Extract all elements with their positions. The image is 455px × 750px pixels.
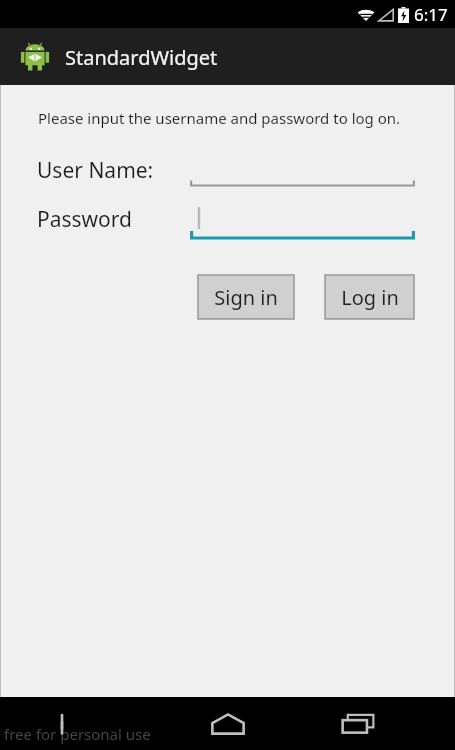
button[interactable]: Recent apps — [328, 697, 388, 750]
staticText: Password — [37, 205, 132, 234]
staticText: User Name: — [37, 156, 154, 185]
button[interactable]: Home — [196, 697, 260, 750]
staticText: StandardWidget — [65, 44, 218, 71]
staticText: free for personal use — [4, 724, 151, 744]
button[interactable] — [190, 205, 415, 241]
button[interactable] — [190, 180, 415, 188]
staticText: Sign in — [214, 284, 278, 311]
staticText: Log in — [341, 284, 399, 311]
button[interactable]: Sign in — [198, 275, 294, 319]
staticText: Please input the username and password t… — [38, 108, 401, 128]
button[interactable]: Log in — [325, 275, 414, 319]
staticText: 6:17 — [414, 3, 448, 26]
